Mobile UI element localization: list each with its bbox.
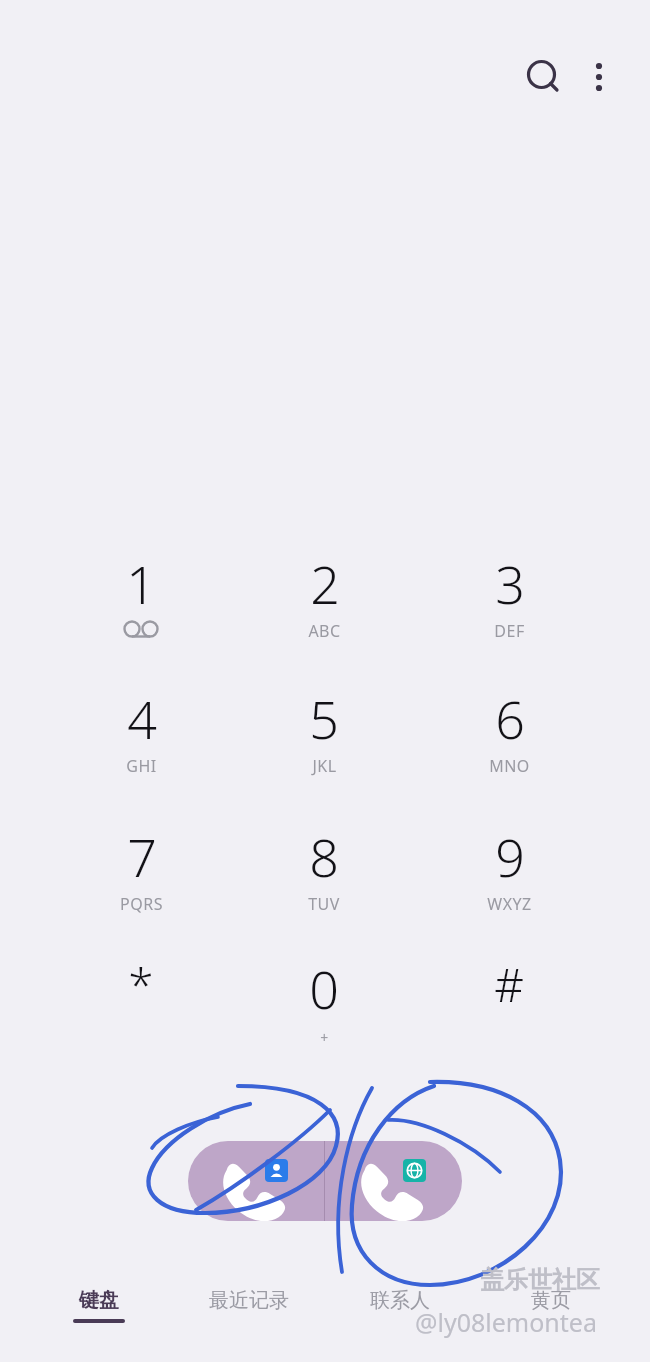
staticText: JKL	[312, 755, 337, 777]
staticText: 9	[495, 821, 525, 892]
staticText: 键盘	[79, 1288, 119, 1313]
button[interactable]: Call with SIM 2	[325, 1141, 462, 1221]
button[interactable]: 键盘	[24, 1288, 174, 1350]
button[interactable]: 1	[66, 548, 216, 672]
button[interactable]: More options	[575, 53, 623, 101]
staticText: PQRS	[120, 893, 163, 915]
staticText: 盖乐世社区	[480, 1265, 600, 1295]
staticText: 8	[309, 821, 339, 892]
button[interactable]: Call with SIM 1	[188, 1141, 324, 1221]
staticText: 6	[495, 683, 525, 754]
button[interactable]: 9	[434, 821, 584, 945]
button[interactable]: 3	[434, 548, 584, 672]
button[interactable]: Search	[518, 53, 568, 103]
button[interactable]: 7	[66, 821, 216, 945]
staticText: 黄页	[531, 1288, 571, 1313]
staticText: 0	[309, 953, 339, 1024]
staticText: DEF	[494, 620, 525, 642]
staticText: 3	[495, 548, 525, 619]
staticText: *	[128, 953, 154, 1016]
staticText: 7	[127, 821, 157, 892]
button[interactable]: 2	[249, 548, 399, 672]
staticText: GHI	[126, 755, 157, 777]
button[interactable]: 5	[249, 683, 399, 807]
staticText: 2	[310, 548, 340, 619]
staticText: 5	[309, 683, 339, 754]
staticText: +	[320, 1028, 329, 1047]
button[interactable]: 8	[249, 821, 399, 945]
button[interactable]: *	[66, 953, 216, 1077]
button[interactable]: #	[434, 953, 584, 1077]
button[interactable]: 6	[434, 683, 584, 807]
button[interactable]: 联系人	[325, 1288, 475, 1350]
staticText: TUV	[308, 893, 340, 915]
staticText: ABC	[308, 620, 341, 642]
staticText: 联系人	[370, 1288, 430, 1313]
staticText: 4	[127, 683, 157, 754]
staticText: 最近记录	[209, 1288, 289, 1313]
staticText: @ly08lemontea	[415, 1305, 597, 1339]
button[interactable]: 4	[66, 683, 216, 807]
staticText: #	[494, 953, 524, 1016]
button[interactable]: 黄页	[476, 1288, 626, 1350]
staticText: MNO	[489, 755, 530, 777]
staticText: WXYZ	[487, 893, 532, 915]
staticText: 1	[126, 548, 156, 619]
button[interactable]: 最近记录	[174, 1288, 324, 1350]
button[interactable]: 0	[249, 953, 399, 1077]
